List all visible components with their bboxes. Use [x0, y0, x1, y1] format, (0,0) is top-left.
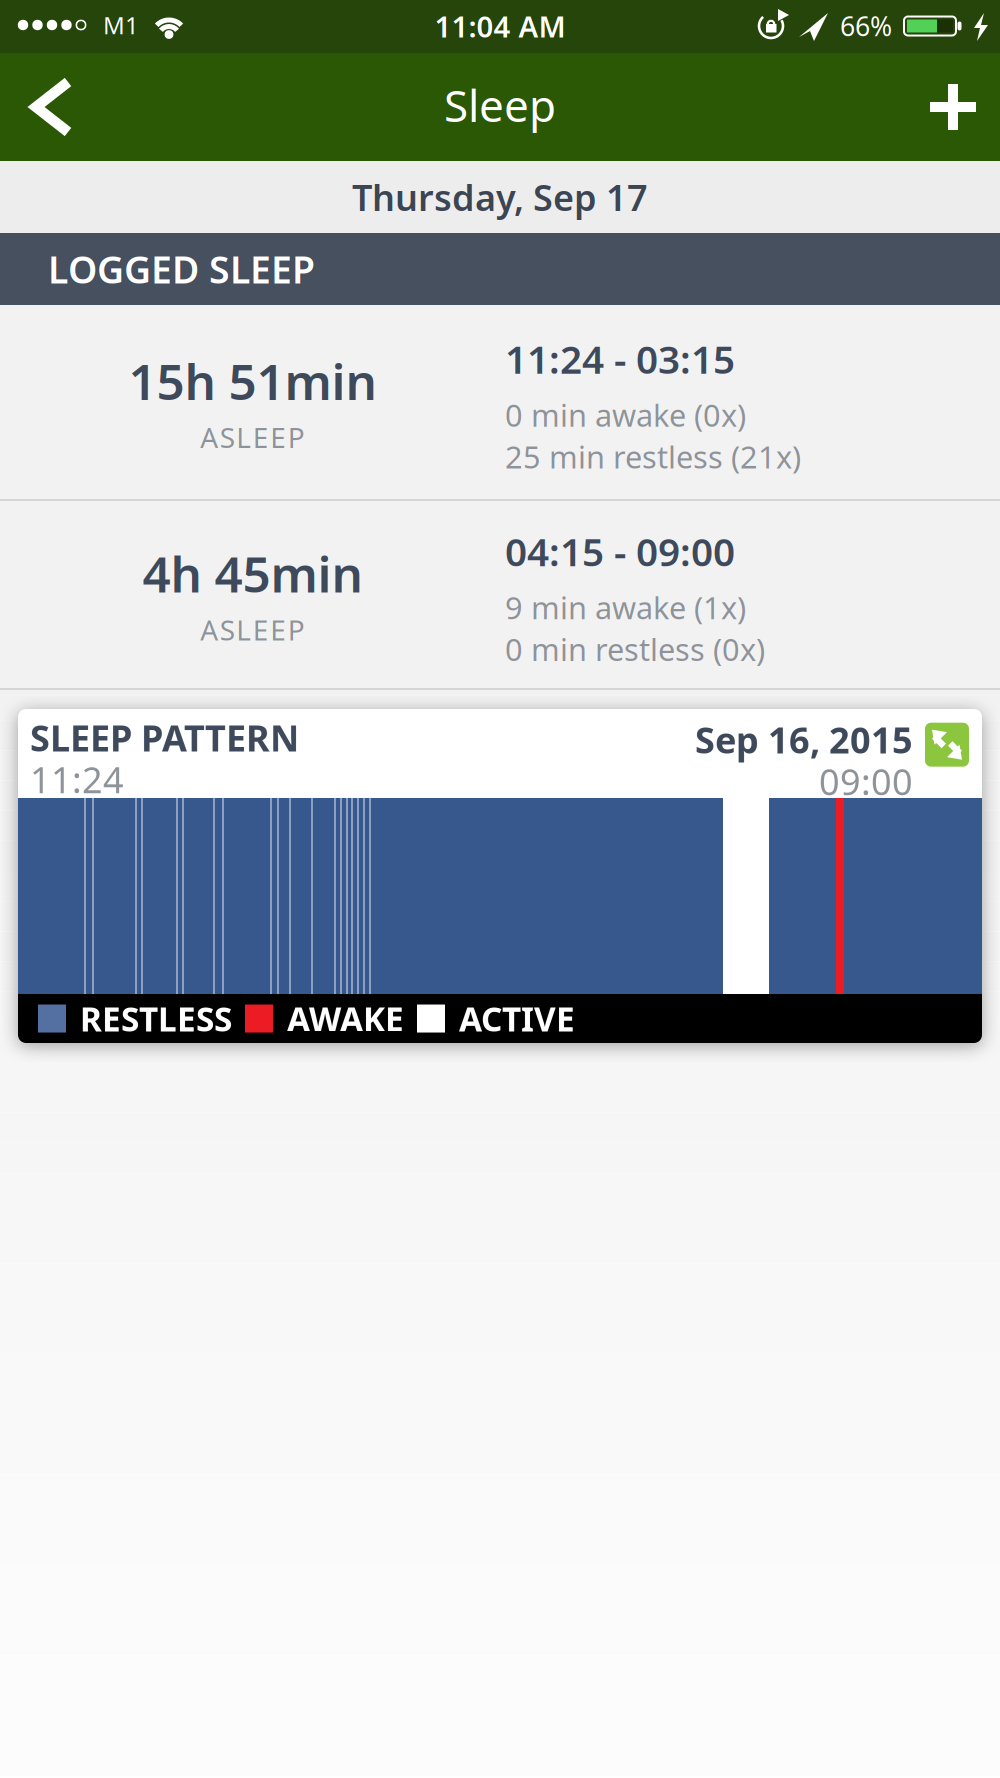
staticText: 66% [840, 8, 892, 44]
staticText: Sleep [444, 76, 556, 134]
staticText: 15h 51min [128, 348, 376, 414]
staticText: LOGGED SLEEP [48, 244, 315, 294]
button[interactable]: Back [0, 53, 110, 161]
button[interactable]: 4h 45min [0, 501, 1000, 688]
staticText: 11:04 AM [434, 6, 565, 45]
button[interactable]: Expand sleep pattern [925, 723, 969, 767]
staticText: SLEEP PATTERN [30, 714, 299, 761]
staticText: ACTIVE [459, 996, 575, 1041]
staticText: AWAKE [287, 996, 404, 1041]
staticText: 0 min awake (0x) [505, 394, 746, 435]
staticText: ASLEEP [200, 611, 305, 648]
staticText: Thursday, Sep 17 [352, 173, 648, 221]
staticText: RESTLESS [80, 996, 232, 1041]
button[interactable]: Add sleep log [903, 53, 1000, 161]
staticText: 04:15 - 09:00 [505, 526, 735, 577]
staticText: 4h 45min [142, 541, 362, 606]
staticText: 11:24 [30, 755, 124, 803]
staticText: 9 min awake (1x) [505, 587, 746, 628]
staticText: ASLEEP [200, 419, 305, 456]
staticText: Sep 16, 2015 [695, 716, 913, 763]
staticText: 11:24 - 03:15 [505, 333, 735, 384]
staticText: 09:00 [819, 757, 913, 805]
staticText: 0 min restless (0x) [505, 629, 765, 669]
staticText: M1 [103, 9, 139, 41]
button[interactable]: 15h 51min [0, 305, 1000, 499]
staticText: 25 min restless (21x) [505, 436, 801, 477]
